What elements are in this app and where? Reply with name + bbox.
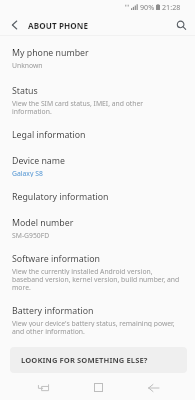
button[interactable]: Search bbox=[167, 14, 195, 36]
staticText: 21:28 bbox=[162, 2, 181, 12]
staticText: Regulatory information bbox=[12, 191, 109, 203]
button[interactable]: Back bbox=[136, 375, 170, 400]
staticText: Device name bbox=[12, 155, 65, 167]
button[interactable]: Status bbox=[0, 78, 195, 122]
button[interactable]: Legal information bbox=[0, 122, 195, 148]
button[interactable]: My phone number bbox=[0, 40, 195, 78]
button[interactable]: Regulatory information bbox=[0, 184, 195, 210]
staticText: and other information. bbox=[12, 327, 85, 335]
button[interactable]: Battery information bbox=[0, 298, 195, 342]
button[interactable]: Home bbox=[81, 375, 115, 400]
staticText: Model number bbox=[12, 217, 74, 229]
button[interactable]: LOOKING FOR SOMETHING ELSE? bbox=[10, 347, 187, 373]
staticText: View the SIM card status, IMEI, and othe… bbox=[12, 99, 144, 107]
button[interactable]: Software information bbox=[0, 246, 195, 298]
staticText: SM-G950FD bbox=[12, 231, 50, 239]
staticText: Unknown bbox=[12, 61, 43, 69]
button[interactable]: Model number bbox=[0, 210, 195, 246]
button[interactable]: Recent apps bbox=[26, 375, 60, 400]
staticText: View the currently installed Android ver… bbox=[12, 267, 153, 275]
staticText: LOOKING FOR SOMETHING ELSE? bbox=[21, 355, 148, 365]
staticText: Status bbox=[12, 85, 38, 97]
staticText: Battery information bbox=[12, 305, 94, 317]
staticText: more. bbox=[12, 283, 31, 291]
staticText: My phone number bbox=[12, 47, 89, 59]
staticText: Legal information bbox=[12, 129, 86, 141]
staticText: Software information bbox=[12, 253, 100, 265]
staticText: information. bbox=[12, 107, 52, 115]
button[interactable]: Device name bbox=[0, 148, 195, 184]
staticText: baseband version, kernel version, build … bbox=[12, 275, 180, 283]
staticText: Galaxy S8 bbox=[12, 169, 43, 177]
button[interactable]: Back bbox=[0, 14, 28, 36]
staticText: ABOUT PHONE bbox=[28, 20, 89, 31]
staticText: 90% bbox=[140, 2, 155, 12]
staticText: View your device's battery status, remai… bbox=[12, 319, 175, 327]
